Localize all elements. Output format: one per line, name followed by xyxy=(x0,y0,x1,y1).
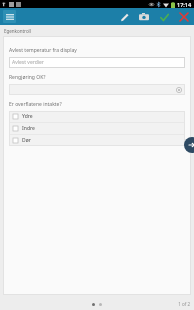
button[interactable] xyxy=(9,84,185,95)
button[interactable]: Dør xyxy=(9,135,185,146)
staticText: 1 of 2 xyxy=(178,301,190,307)
staticText: Indre xyxy=(22,125,35,132)
staticText: Egenkontroll xyxy=(4,28,31,34)
button[interactable]: Indre xyxy=(9,123,185,134)
button[interactable]: Cancel xyxy=(178,11,190,23)
staticText: Ydre xyxy=(22,113,33,120)
button[interactable]: Avlest verdier xyxy=(9,57,185,68)
staticText: Er overflatene intakte? xyxy=(9,101,62,108)
button[interactable]: Camera xyxy=(138,11,150,23)
button[interactable]: Next page xyxy=(184,137,194,153)
button[interactable]: Open navigation drawer xyxy=(3,10,16,23)
staticText: Avlest temperatur fra display xyxy=(9,47,77,54)
button[interactable]: Edit xyxy=(118,11,130,23)
button[interactable]: Save xyxy=(158,11,170,23)
staticText: Avlest verdier xyxy=(12,59,44,66)
staticText: 17:14 xyxy=(177,1,192,8)
staticText: Rengjøring OK? xyxy=(9,74,46,81)
staticText: Dør xyxy=(22,137,31,144)
button[interactable]: Ydre xyxy=(9,111,185,122)
